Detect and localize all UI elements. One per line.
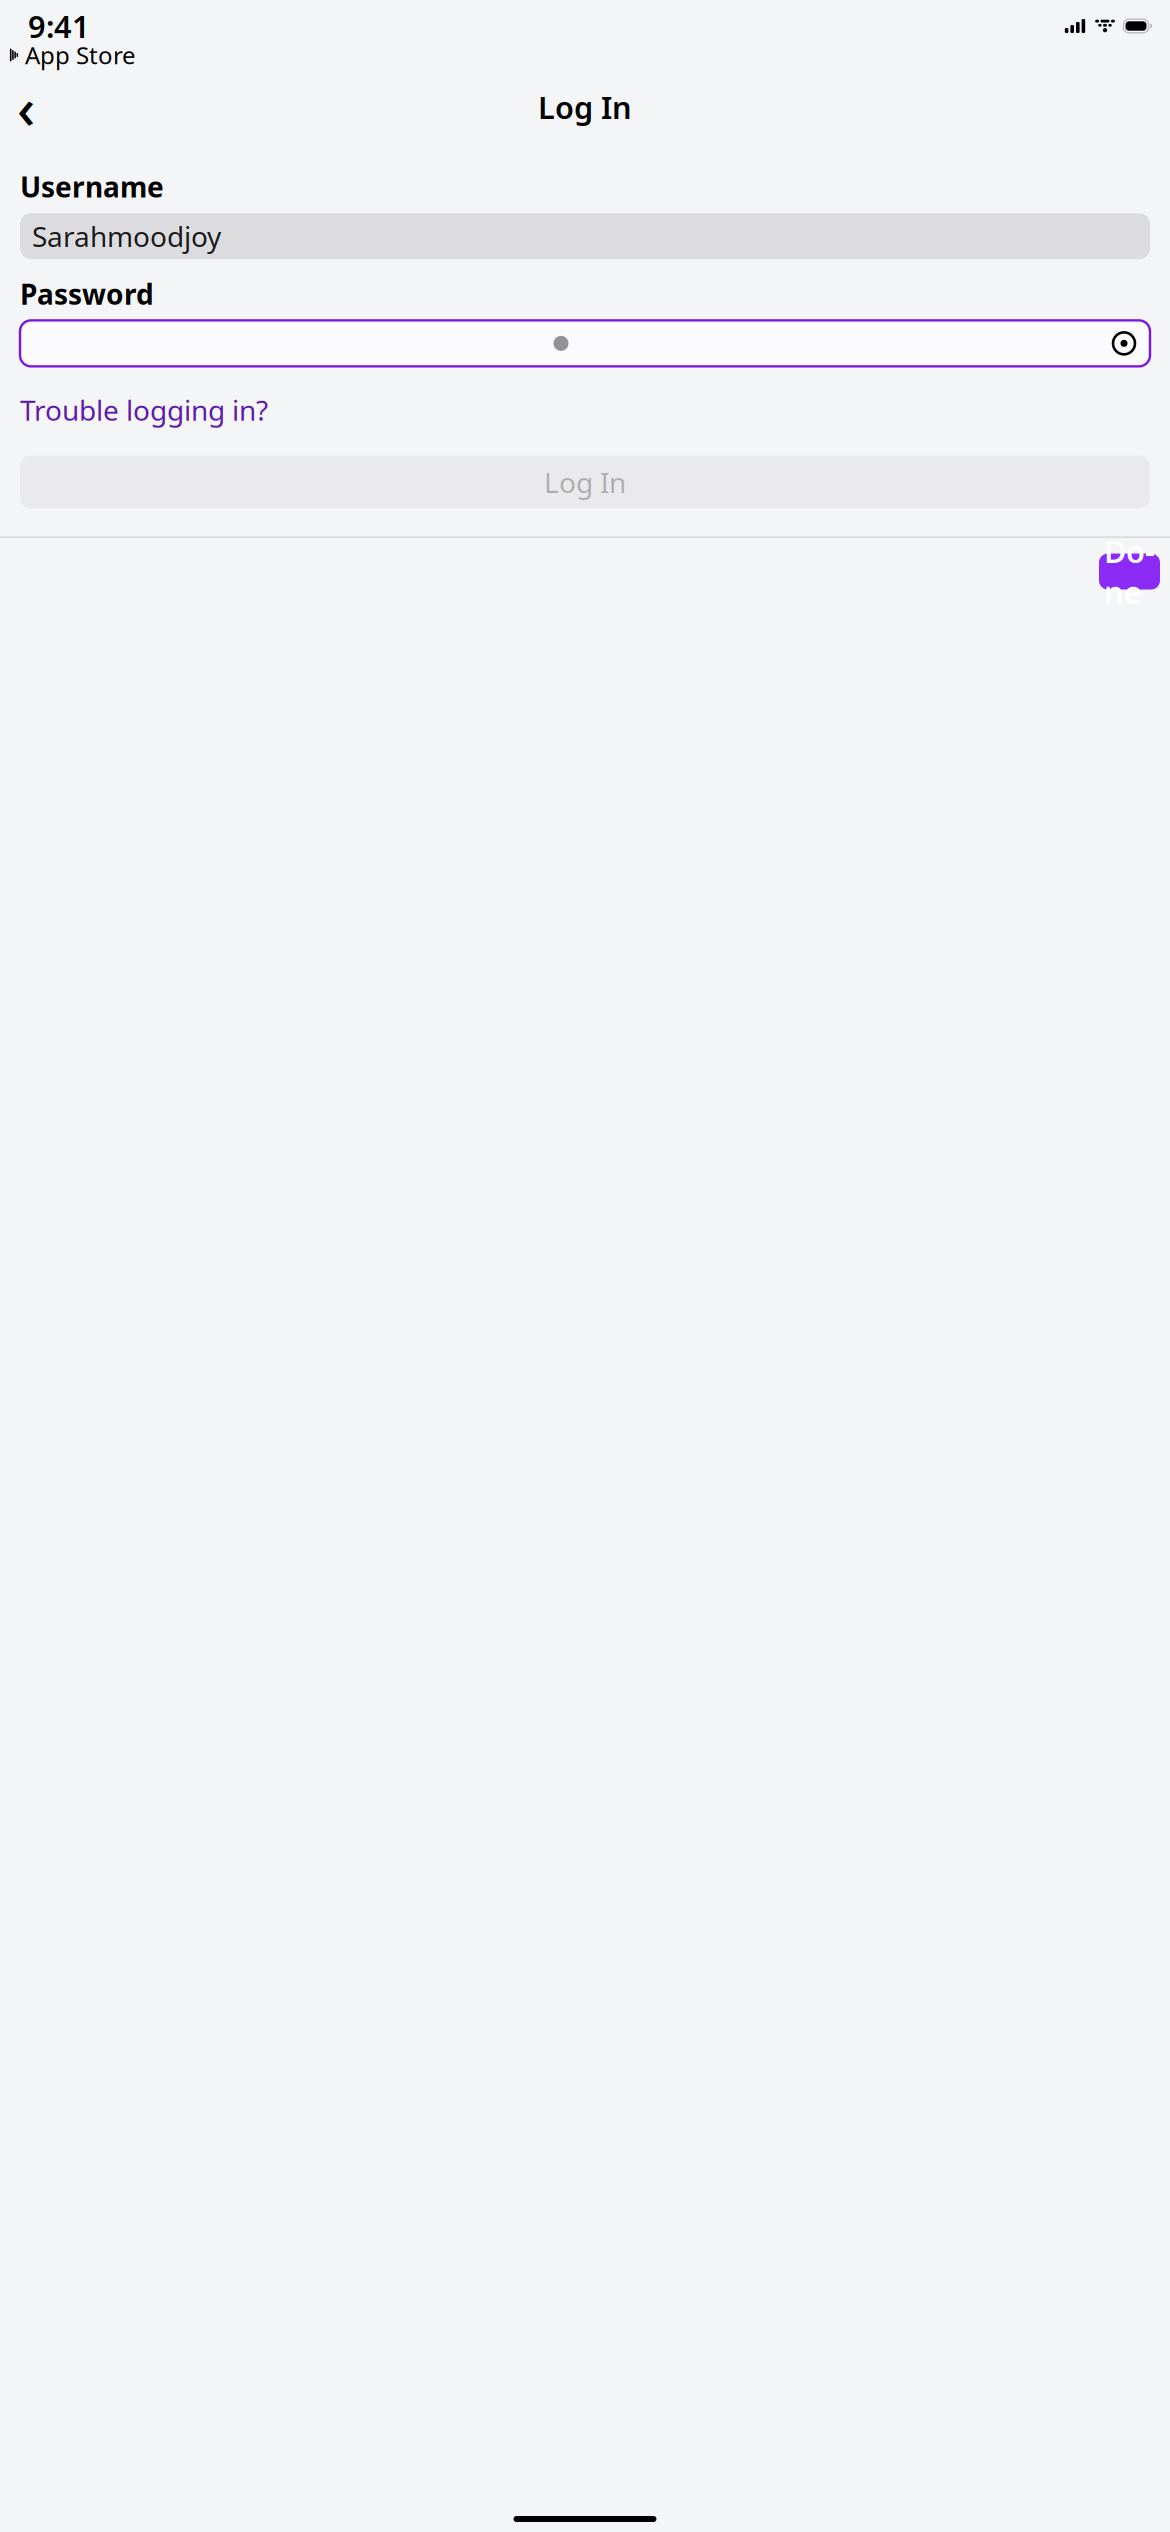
staticText: Trouble logging in? bbox=[20, 391, 268, 429]
staticText: Username bbox=[20, 168, 164, 205]
staticText: Log In bbox=[544, 463, 626, 501]
staticText: Log In bbox=[538, 87, 632, 127]
staticText: Sarahmoodjoy bbox=[32, 218, 221, 255]
button[interactable]: Show password bbox=[1102, 321, 1146, 365]
button[interactable]: Done bbox=[1099, 553, 1160, 589]
button[interactable]: Back bbox=[2, 84, 50, 130]
button[interactable]: Log In bbox=[20, 455, 1150, 508]
staticText: Done bbox=[1104, 531, 1155, 612]
staticText: ‹ bbox=[17, 70, 35, 144]
staticText: 9:41 bbox=[28, 6, 90, 46]
button[interactable]: Trouble logging in? bbox=[20, 386, 268, 434]
staticText: Password bbox=[20, 275, 154, 312]
staticText: App Store bbox=[25, 39, 136, 71]
